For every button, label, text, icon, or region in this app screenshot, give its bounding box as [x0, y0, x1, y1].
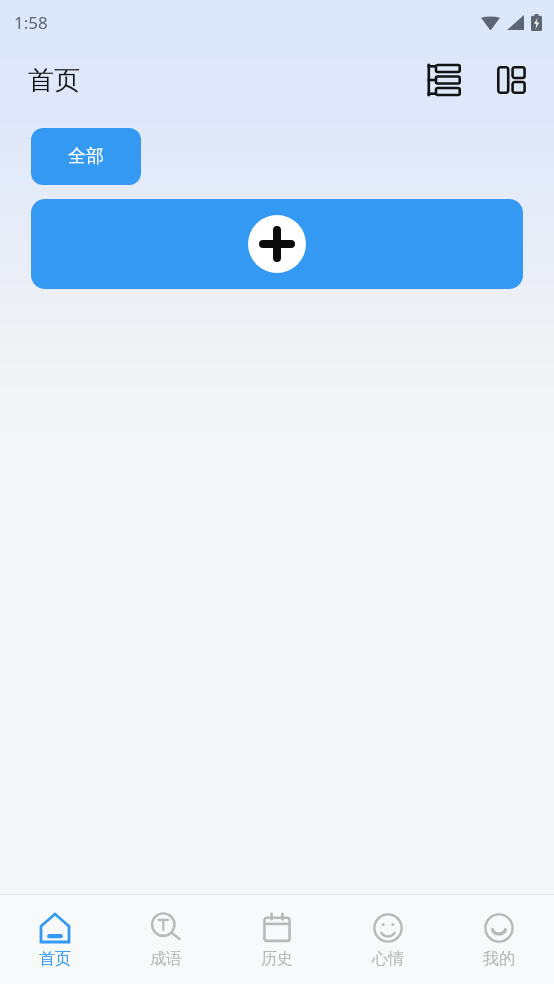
staticText: 首页 — [28, 64, 80, 97]
staticText: 成语 — [150, 949, 182, 969]
button[interactable]: Grid view — [490, 58, 534, 102]
button[interactable]: 我的 — [443, 903, 554, 977]
staticText: 1:58 — [14, 11, 48, 34]
button[interactable]: List view — [422, 58, 466, 102]
staticText: 全部 — [68, 145, 104, 168]
button[interactable]: 成语 — [110, 903, 221, 977]
staticText: 我的 — [483, 949, 515, 969]
button[interactable]: 心情 — [332, 903, 443, 977]
button[interactable]: Add — [31, 199, 523, 289]
staticText: 心情 — [372, 949, 404, 969]
button[interactable]: 全部 — [31, 128, 141, 185]
button[interactable]: 首页 — [0, 903, 110, 977]
button[interactable]: 历史 — [221, 903, 332, 977]
staticText: 历史 — [261, 949, 293, 969]
staticText: 首页 — [39, 949, 71, 969]
